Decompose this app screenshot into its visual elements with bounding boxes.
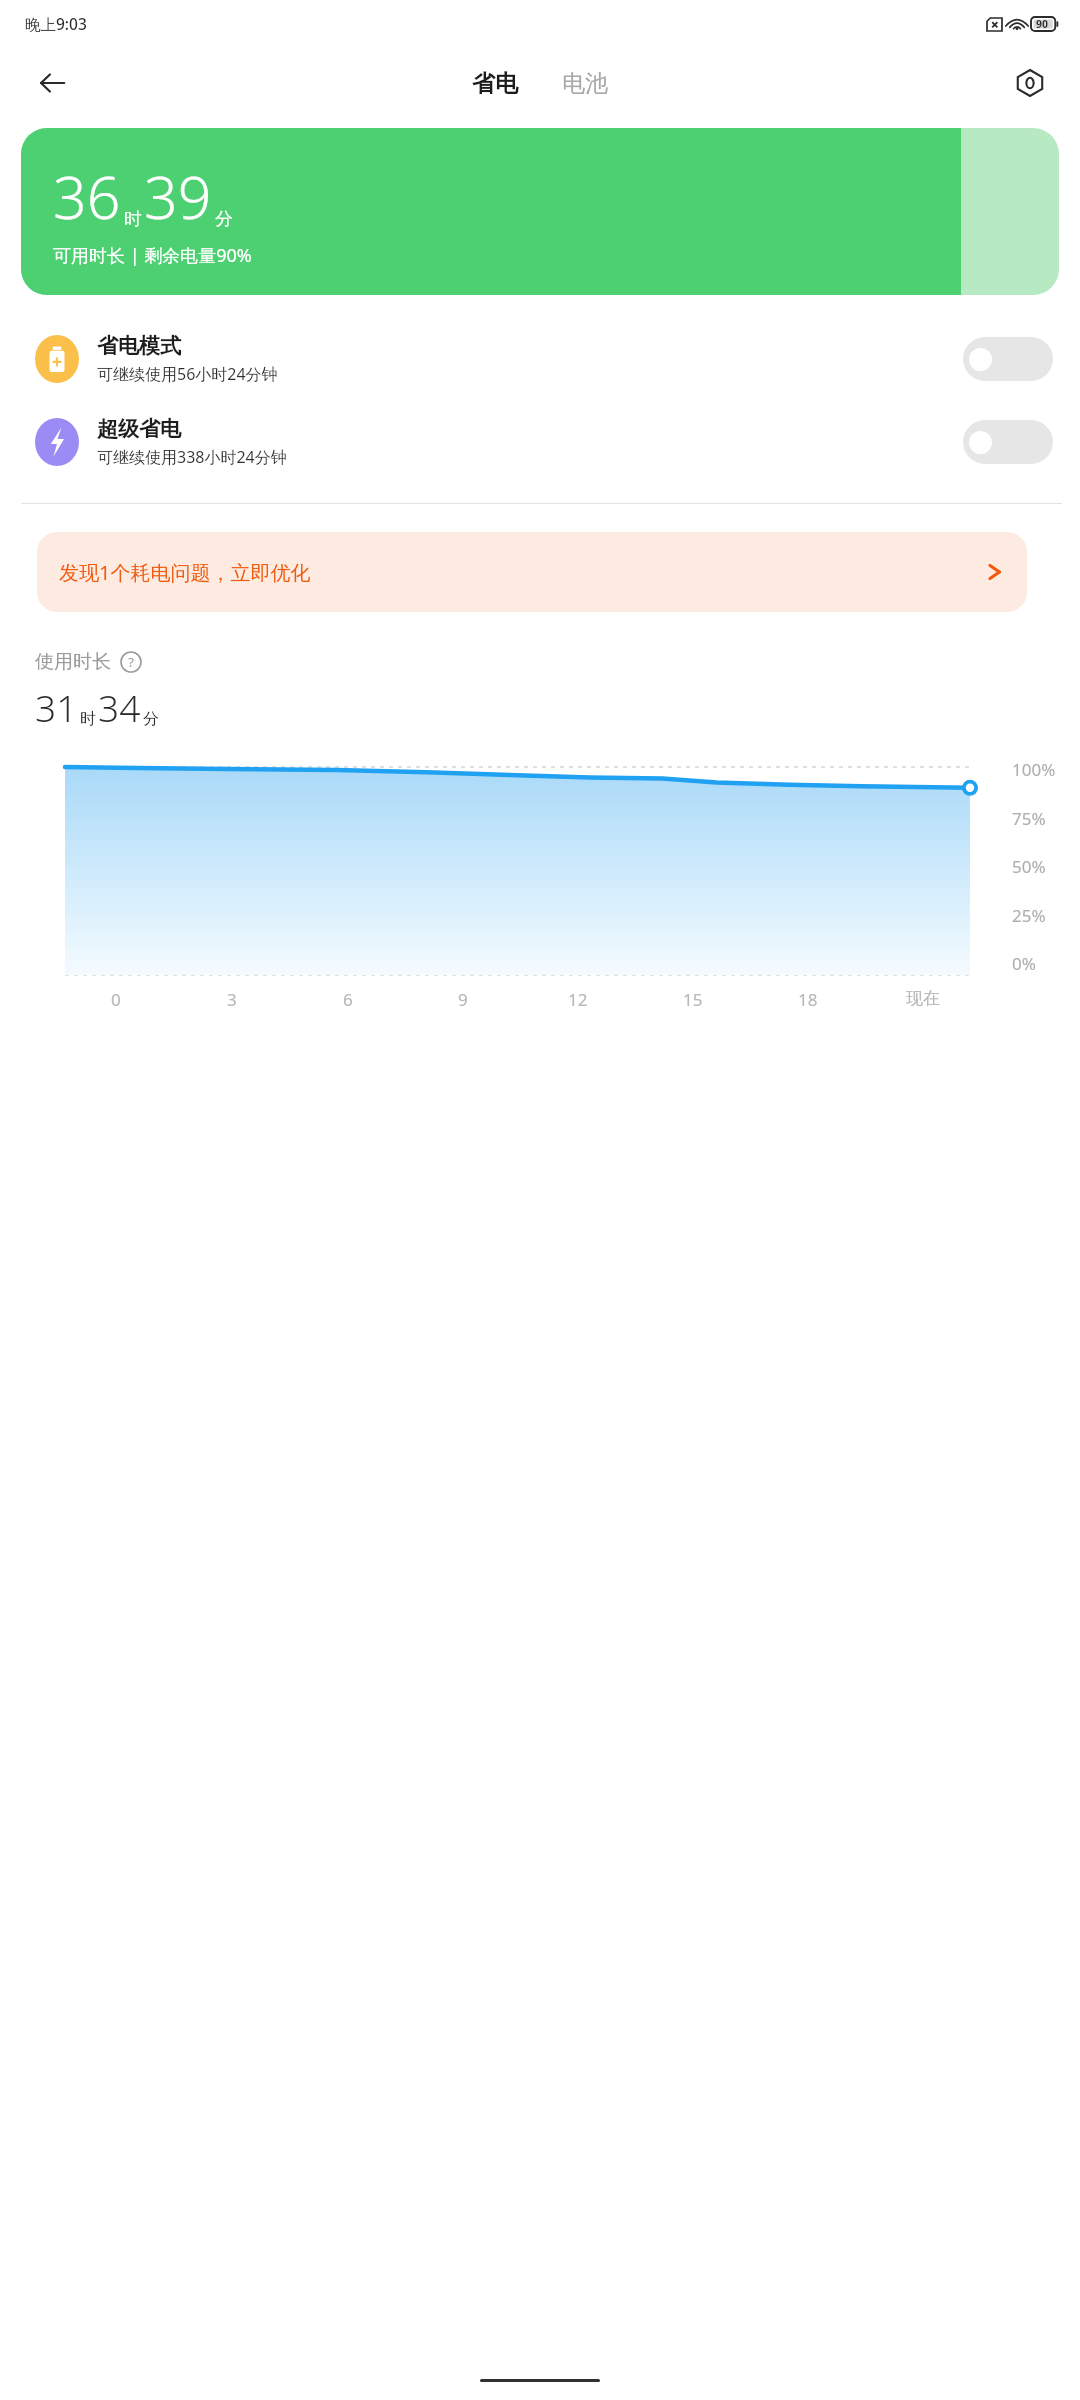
staticText: 电池 bbox=[562, 69, 608, 98]
staticText: 晚上9:03 bbox=[25, 13, 87, 34]
staticText: 0 bbox=[111, 988, 121, 1011]
staticText: 34 bbox=[98, 682, 141, 732]
staticText: 12 bbox=[568, 988, 588, 1011]
button[interactable]: 省电模式 bbox=[0, 317, 1080, 400]
button[interactable]: 超级省电 bbox=[0, 400, 1080, 483]
staticText: 100% bbox=[1012, 758, 1056, 781]
button[interactable]: 超级省电开关 bbox=[963, 420, 1053, 464]
staticText: 0% bbox=[1012, 952, 1036, 975]
staticText: 发现1个耗电问题，立即优化 bbox=[59, 559, 311, 586]
button[interactable]: 发现1个耗电问题，立即优化 bbox=[37, 532, 1027, 612]
staticText: 分 bbox=[143, 709, 159, 729]
staticText: 90 bbox=[1036, 17, 1049, 31]
staticText: 现在 bbox=[906, 988, 940, 1009]
button[interactable]: 36 bbox=[21, 128, 1059, 295]
staticText: 39 bbox=[144, 156, 212, 236]
button[interactable]: 省电模式开关 bbox=[963, 337, 1053, 381]
staticText: 可继续使用56小时24分钟 bbox=[97, 363, 278, 385]
staticText: 时 bbox=[80, 709, 96, 729]
staticText: 6 bbox=[343, 988, 353, 1011]
button[interactable]: 省电 bbox=[466, 65, 524, 102]
button[interactable]: 说明 bbox=[120, 651, 142, 673]
staticText: 分 bbox=[215, 208, 233, 231]
staticText: 25% bbox=[1012, 904, 1046, 927]
staticText: 可用时长 | 剩余电量90% bbox=[53, 243, 252, 268]
staticText: 31 bbox=[35, 682, 78, 732]
staticText: 时 bbox=[124, 208, 142, 231]
staticText: 36 bbox=[53, 156, 121, 236]
button[interactable]: 返回 bbox=[30, 61, 74, 105]
staticText: 使用时长 bbox=[35, 650, 111, 674]
staticText: 可继续使用338小时24分钟 bbox=[97, 446, 287, 468]
staticText: 省电模式 bbox=[97, 333, 181, 359]
staticText: ? bbox=[128, 653, 134, 671]
staticText: 18 bbox=[798, 988, 818, 1011]
staticText: 15 bbox=[683, 988, 703, 1011]
staticText: 50% bbox=[1012, 855, 1046, 878]
staticText: 省电 bbox=[472, 69, 518, 98]
button[interactable]: 设置 bbox=[1008, 61, 1052, 105]
button[interactable]: 电池 bbox=[556, 65, 614, 102]
staticText: 超级省电 bbox=[97, 416, 181, 442]
staticText: 9 bbox=[458, 988, 468, 1011]
staticText: 75% bbox=[1012, 807, 1046, 830]
staticText: 3 bbox=[227, 988, 237, 1011]
